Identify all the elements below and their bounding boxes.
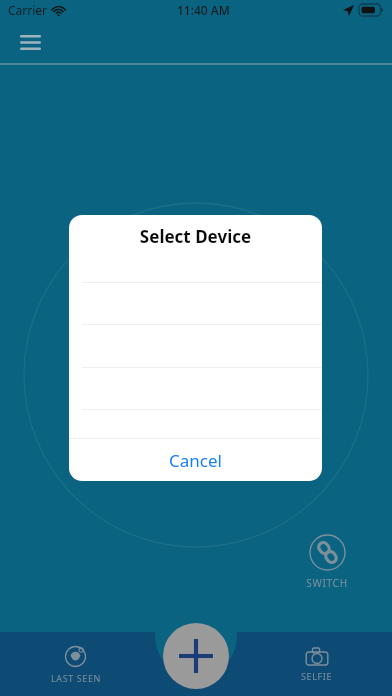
button[interactable]: LAST SEEN <box>0 645 151 684</box>
button[interactable] <box>69 409 322 451</box>
staticText: SWITCH <box>298 576 356 590</box>
staticText: Select Device <box>69 225 322 248</box>
button[interactable]: Add <box>163 623 229 689</box>
staticText: LAST SEEN <box>51 672 101 684</box>
staticText: Carrier <box>8 2 48 18</box>
button[interactable]: SELFIE <box>241 647 392 682</box>
button[interactable]: Cancel <box>69 439 322 481</box>
button[interactable]: SWITCH <box>298 534 356 590</box>
button[interactable]: Menu <box>8 22 52 62</box>
staticText: 11:40 AM <box>177 2 230 18</box>
staticText: SELFIE <box>301 670 332 682</box>
staticText: Cancel <box>69 449 322 472</box>
